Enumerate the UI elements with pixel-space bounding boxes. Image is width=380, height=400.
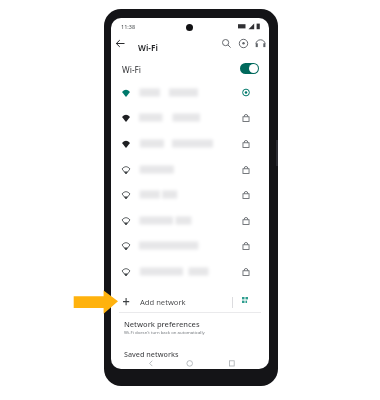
button[interactable]: Wi-Fi network <box>111 80 269 106</box>
staticText: Network preferences <box>124 319 200 329</box>
staticText: Wi-Fi <box>122 64 142 75</box>
button[interactable]: Add network <box>111 289 269 312</box>
button[interactable]: Saved networks <box>111 344 269 366</box>
staticText: Saved networks <box>124 349 179 359</box>
staticText: Wi-Fi doesn't turn back on automatically <box>124 329 205 335</box>
button[interactable]: Wi-Fi network <box>111 157 269 183</box>
button[interactable]: Back <box>114 37 127 50</box>
button[interactable]: Wi-Fi <box>111 54 269 78</box>
staticText: Wi-Fi <box>138 42 158 53</box>
staticText: Add network <box>140 297 186 307</box>
button[interactable]: Wi-Fi network <box>111 233 269 259</box>
button[interactable]: Help <box>237 37 250 50</box>
button[interactable]: Network preferences <box>111 316 269 344</box>
button[interactable]: Support <box>254 37 267 50</box>
button[interactable]: Wi-Fi network <box>111 131 269 157</box>
button[interactable]: Wi-Fi network <box>111 259 269 285</box>
button[interactable]: Search <box>220 37 233 50</box>
button[interactable]: Scan QR code to add network <box>242 297 248 303</box>
button[interactable]: Wi-Fi network <box>111 208 269 234</box>
staticText: 11:38 <box>121 23 136 30</box>
button[interactable]: Wi-Fi network <box>111 182 269 208</box>
button[interactable]: Wi-Fi network <box>111 105 269 131</box>
